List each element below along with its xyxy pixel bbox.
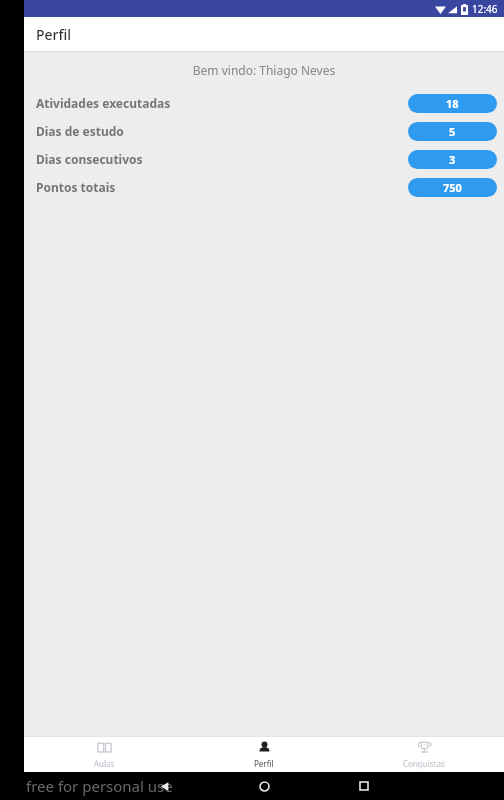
staticText: Dias de estudo <box>36 123 124 139</box>
staticText: 18 <box>446 96 459 111</box>
button[interactable]: Aulas <box>24 737 184 772</box>
button[interactable]: Dias de estudo <box>24 117 504 145</box>
button[interactable]: Perfil <box>184 737 344 772</box>
staticText: Dias consecutivos <box>36 151 143 167</box>
staticText: Conquistas <box>403 758 445 769</box>
staticText: Perfil <box>36 25 72 44</box>
button[interactable]: Atividades executadas <box>24 89 504 117</box>
staticText: Bem vindo: Thiago Neves <box>24 62 504 78</box>
staticText: 12:46 <box>472 2 498 16</box>
button[interactable]: Recents <box>314 772 414 800</box>
staticText: Pontos totais <box>36 179 116 195</box>
staticText: Perfil <box>254 758 274 769</box>
button[interactable]: Back <box>114 772 214 800</box>
staticText: 5 <box>449 124 456 139</box>
button[interactable]: Dias consecutivos <box>24 145 504 173</box>
button[interactable]: Conquistas <box>344 737 504 772</box>
staticText: 3 <box>449 152 456 167</box>
button[interactable]: Home <box>214 772 314 800</box>
button[interactable]: Pontos totais <box>24 173 504 201</box>
staticText: 750 <box>443 180 462 195</box>
staticText: Aulas <box>94 758 115 769</box>
staticText: free for personal use <box>26 776 173 796</box>
staticText: Atividades executadas <box>36 95 171 111</box>
